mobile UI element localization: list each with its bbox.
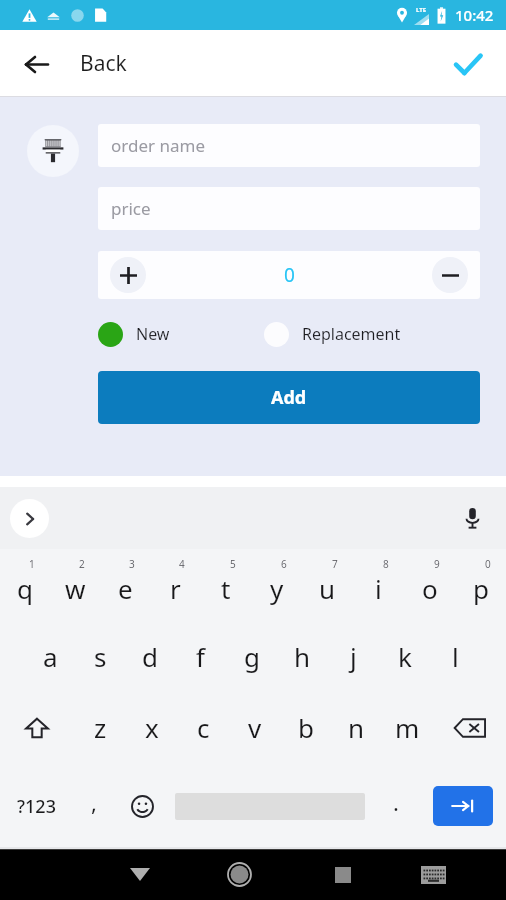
staticText: 2 — [79, 557, 85, 571]
staticText: e — [118, 571, 133, 606]
button[interactable]: Home — [183, 849, 295, 900]
staticText: 0 — [284, 262, 295, 288]
staticText: x — [145, 710, 159, 745]
staticText: 6 — [281, 557, 287, 571]
button[interactable]: l — [430, 621, 481, 692]
staticText: LTE — [416, 6, 427, 14]
button[interactable]: j — [328, 621, 379, 692]
staticText: price — [111, 197, 151, 220]
button[interactable]: Replacement — [264, 314, 480, 354]
button[interactable]: 7 — [302, 549, 353, 621]
button[interactable]: s — [75, 621, 125, 692]
button[interactable]: 0 — [455, 549, 506, 621]
button[interactable]: 2 — [50, 549, 100, 621]
button[interactable]: Shift — [0, 692, 74, 763]
staticText: 0 — [485, 557, 491, 571]
button[interactable]: Switch keyboard — [390, 849, 476, 900]
button[interactable]: n — [331, 692, 382, 763]
button[interactable]: z — [74, 692, 126, 763]
staticText: i — [375, 571, 382, 606]
staticText: o — [422, 571, 438, 606]
button[interactable]: h — [277, 621, 328, 692]
staticText: 7 — [332, 557, 338, 571]
staticText: g — [244, 639, 260, 674]
button[interactable]: price — [98, 187, 480, 230]
button[interactable]: Enter — [433, 786, 493, 826]
button[interactable]: v — [229, 692, 280, 763]
button[interactable]: x — [126, 692, 178, 763]
button[interactable]: Back — [12, 40, 60, 88]
staticText: New — [136, 323, 170, 345]
staticText: u — [319, 571, 336, 606]
button[interactable]: 6 — [251, 549, 302, 621]
staticText: p — [473, 571, 489, 606]
staticText: , — [91, 787, 97, 817]
staticText: . — [393, 787, 399, 817]
button[interactable]: Decrease — [432, 257, 468, 293]
button[interactable]: Add — [98, 371, 480, 424]
staticText: b — [298, 710, 314, 745]
button[interactable]: Recent apps — [295, 849, 390, 900]
button[interactable]: 9 — [404, 549, 455, 621]
staticText: c — [197, 710, 210, 745]
staticText: l — [452, 639, 459, 674]
button[interactable]: Voice input — [452, 498, 492, 538]
button[interactable]: New — [98, 314, 264, 354]
staticText: 4 — [179, 557, 185, 571]
button[interactable]: 5 — [200, 549, 251, 621]
staticText: w — [65, 571, 86, 606]
button[interactable]: Expand suggestions — [10, 499, 49, 538]
staticText: a — [43, 639, 58, 674]
button[interactable]: , — [72, 763, 116, 849]
staticText: t — [221, 571, 231, 606]
button[interactable]: f — [175, 621, 226, 692]
staticText: z — [94, 710, 107, 745]
button[interactable]: Emoji — [116, 763, 168, 849]
staticText: k — [398, 639, 412, 674]
staticText: 3 — [129, 557, 135, 571]
staticText: n — [348, 710, 365, 745]
staticText: q — [17, 571, 33, 606]
button[interactable]: 3 — [100, 549, 150, 621]
staticText: 8 — [383, 557, 389, 571]
button[interactable]: Space — [168, 763, 372, 849]
button[interactable]: 1 — [0, 549, 50, 621]
button[interactable]: d — [125, 621, 175, 692]
staticText: 10:42 — [455, 5, 494, 25]
button[interactable]: Confirm — [444, 40, 492, 88]
button[interactable]: 8 — [353, 549, 404, 621]
button[interactable]: order name — [98, 124, 480, 167]
button[interactable]: Backspace — [433, 692, 506, 763]
staticText: 9 — [434, 557, 440, 571]
staticText: f — [196, 639, 205, 674]
staticText: v — [248, 710, 262, 745]
button[interactable]: g — [226, 621, 277, 692]
staticText: 5 — [230, 557, 236, 571]
staticText: d — [142, 639, 158, 674]
staticText: m — [395, 710, 420, 745]
staticText: Add — [271, 385, 307, 410]
staticText: 1 — [29, 557, 35, 571]
staticText: Replacement — [302, 323, 401, 345]
button[interactable]: b — [280, 692, 331, 763]
staticText: Back — [80, 49, 127, 78]
button[interactable]: 4 — [150, 549, 200, 621]
button[interactable]: c — [178, 692, 229, 763]
staticText: j — [350, 639, 357, 674]
staticText: s — [94, 639, 107, 674]
button[interactable]: ?123 — [0, 763, 72, 849]
button[interactable]: k — [379, 621, 430, 692]
button[interactable]: Increase — [110, 257, 146, 293]
staticText: ?123 — [17, 794, 56, 819]
staticText: h — [294, 639, 311, 674]
button[interactable]: m — [382, 692, 433, 763]
button[interactable]: a — [25, 621, 75, 692]
button[interactable]: . — [372, 763, 419, 849]
staticText: y — [270, 571, 284, 606]
staticText: order name — [111, 134, 205, 157]
button[interactable]: Order icon — [27, 125, 79, 177]
staticText: r — [170, 571, 181, 606]
button[interactable]: Hide keyboard — [96, 849, 183, 900]
